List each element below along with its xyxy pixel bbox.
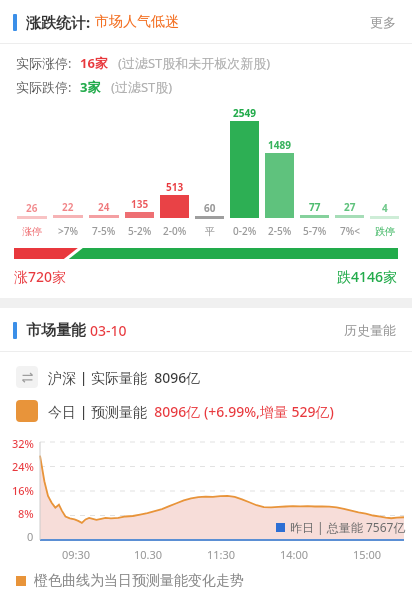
button[interactable]: 今日 | 预测量能 8096亿 (+6.99%,增量 529亿) bbox=[0, 394, 412, 428]
staticText: 1489 bbox=[268, 138, 291, 152]
staticText: 3家 bbox=[80, 78, 101, 96]
staticText: 市场量能 bbox=[26, 321, 86, 340]
staticText: (过滤ST股) bbox=[111, 78, 173, 96]
staticText: 4 bbox=[382, 201, 388, 215]
staticText: >7% bbox=[58, 224, 78, 238]
staticText: 24 bbox=[98, 200, 110, 214]
staticText: 实际涨停: bbox=[16, 54, 72, 72]
staticText: 橙色曲线为当日预测量能变化走势 bbox=[34, 572, 244, 590]
staticText: 26 bbox=[26, 201, 38, 215]
staticText: 涨跌统计: bbox=[26, 12, 91, 32]
button[interactable]: 历史量能 bbox=[342, 318, 398, 342]
staticText: 跌停 bbox=[375, 225, 395, 238]
staticText: 16% bbox=[12, 483, 34, 498]
staticText: 涨720家 bbox=[14, 267, 67, 286]
staticText: 市场人气低迷 bbox=[95, 13, 179, 31]
staticText: 更多 bbox=[370, 14, 396, 30]
staticText: 0-2% bbox=[233, 224, 257, 238]
staticText: 77 bbox=[309, 200, 321, 214]
staticText: 0 bbox=[27, 529, 34, 544]
staticText: 11:30 bbox=[207, 547, 236, 562]
staticText: 09:30 bbox=[62, 547, 91, 562]
staticText: 10.30 bbox=[134, 547, 163, 562]
staticText: 135 bbox=[131, 197, 149, 211]
staticText: 实际跌停: bbox=[16, 78, 72, 96]
staticText: 平 bbox=[205, 225, 215, 238]
staticText: (过滤ST股和未开板次新股) bbox=[118, 54, 271, 72]
staticText: 跌4146家 bbox=[337, 267, 398, 286]
button[interactable]: 更多 bbox=[368, 10, 398, 34]
staticText: 22 bbox=[62, 200, 74, 214]
staticText: 2-5% bbox=[268, 224, 292, 238]
staticText: 2-0% bbox=[163, 224, 187, 238]
staticText: 16家 bbox=[80, 54, 108, 72]
staticText: 2549 bbox=[233, 106, 256, 120]
staticText: 60 bbox=[204, 201, 216, 215]
staticText: 沪深 | 实际量能 8096亿 bbox=[48, 368, 201, 387]
staticText: 5-2% bbox=[128, 224, 152, 238]
staticText: 32% bbox=[12, 436, 34, 451]
staticText: 03-10 bbox=[90, 321, 127, 340]
other: 沪深切换 bbox=[16, 366, 38, 388]
staticText: 8% bbox=[18, 506, 34, 521]
staticText: 24% bbox=[12, 459, 34, 474]
staticText: 7-5% bbox=[92, 224, 116, 238]
staticText: 14:00 bbox=[280, 547, 309, 562]
staticText: 昨日 | 总量能 7567亿 bbox=[290, 519, 406, 535]
staticText: 历史量能 bbox=[344, 322, 396, 338]
staticText: 15:00 bbox=[353, 547, 382, 562]
staticText: 涨停 bbox=[22, 225, 42, 238]
staticText: 5-7% bbox=[303, 224, 327, 238]
staticText: 513 bbox=[166, 180, 184, 194]
button[interactable]: 沪深切换 bbox=[0, 360, 412, 394]
staticText: 7%< bbox=[340, 224, 360, 238]
staticText: 27 bbox=[344, 200, 356, 214]
staticText: 今日 | 预测量能 8096亿 (+6.99%,增量 529亿) bbox=[48, 402, 334, 421]
